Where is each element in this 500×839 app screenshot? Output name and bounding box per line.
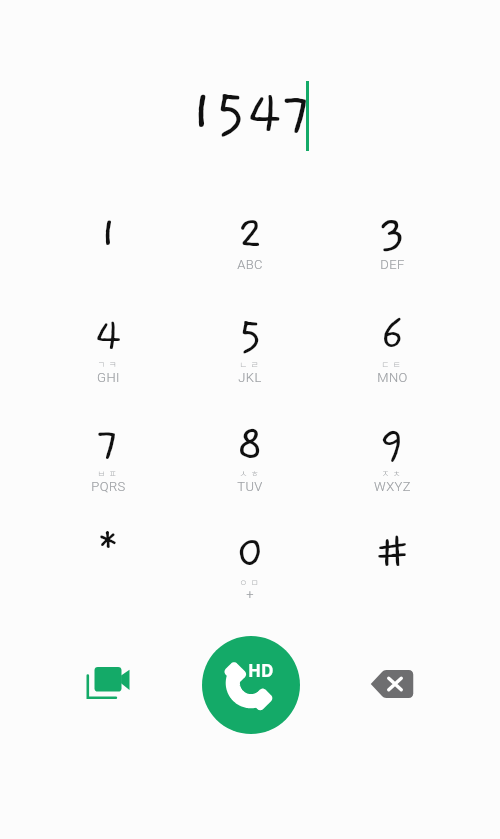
staticText: 6 bbox=[380, 310, 405, 360]
button[interactable] bbox=[50, 516, 166, 612]
staticText: 8 bbox=[236, 419, 264, 469]
staticText: WXYZ bbox=[374, 479, 411, 494]
button[interactable] bbox=[334, 407, 450, 503]
staticText: ㅇㅁ bbox=[239, 576, 262, 589]
staticText: # bbox=[374, 528, 411, 578]
button[interactable] bbox=[192, 516, 308, 612]
staticText: ABC bbox=[237, 257, 263, 272]
button[interactable] bbox=[334, 298, 450, 394]
staticText: ㅂㅍ bbox=[97, 467, 120, 480]
button[interactable] bbox=[192, 197, 308, 293]
staticText: 0 bbox=[236, 528, 265, 578]
button[interactable]: Backspace bbox=[363, 655, 421, 713]
staticText: TUV bbox=[237, 479, 263, 494]
staticText: 7 bbox=[96, 419, 120, 469]
button[interactable]: Call bbox=[202, 636, 300, 734]
staticText: ㅅㅎ bbox=[239, 467, 262, 480]
button[interactable] bbox=[334, 197, 450, 293]
staticText: ㄱㅋ bbox=[97, 358, 120, 371]
staticText: DEF bbox=[380, 257, 405, 272]
staticText: HD bbox=[248, 659, 274, 682]
button[interactable]: Video call bbox=[75, 650, 141, 716]
staticText: PQRS bbox=[91, 479, 126, 494]
staticText: GHI bbox=[97, 370, 120, 385]
staticText: 5 bbox=[238, 310, 263, 360]
staticText: 4 bbox=[94, 310, 122, 360]
staticText: MNO bbox=[377, 370, 408, 385]
staticText: JKL bbox=[238, 370, 262, 385]
button[interactable] bbox=[192, 407, 308, 503]
button[interactable] bbox=[50, 197, 166, 293]
staticText: 3 bbox=[379, 209, 406, 259]
staticText: ㅈㅊ bbox=[381, 467, 404, 480]
button[interactable] bbox=[334, 516, 450, 612]
staticText: * bbox=[94, 528, 122, 578]
staticText: 1 bbox=[98, 209, 119, 259]
staticText: ㄴㄹ bbox=[239, 358, 262, 371]
button[interactable] bbox=[50, 298, 166, 394]
staticText: + bbox=[246, 587, 254, 602]
staticText: ㄷㅌ bbox=[381, 358, 404, 371]
button[interactable] bbox=[192, 298, 308, 394]
staticText: 9 bbox=[379, 419, 405, 469]
button[interactable] bbox=[50, 407, 166, 503]
staticText: 1547 bbox=[189, 81, 313, 145]
staticText: 2 bbox=[237, 209, 264, 259]
